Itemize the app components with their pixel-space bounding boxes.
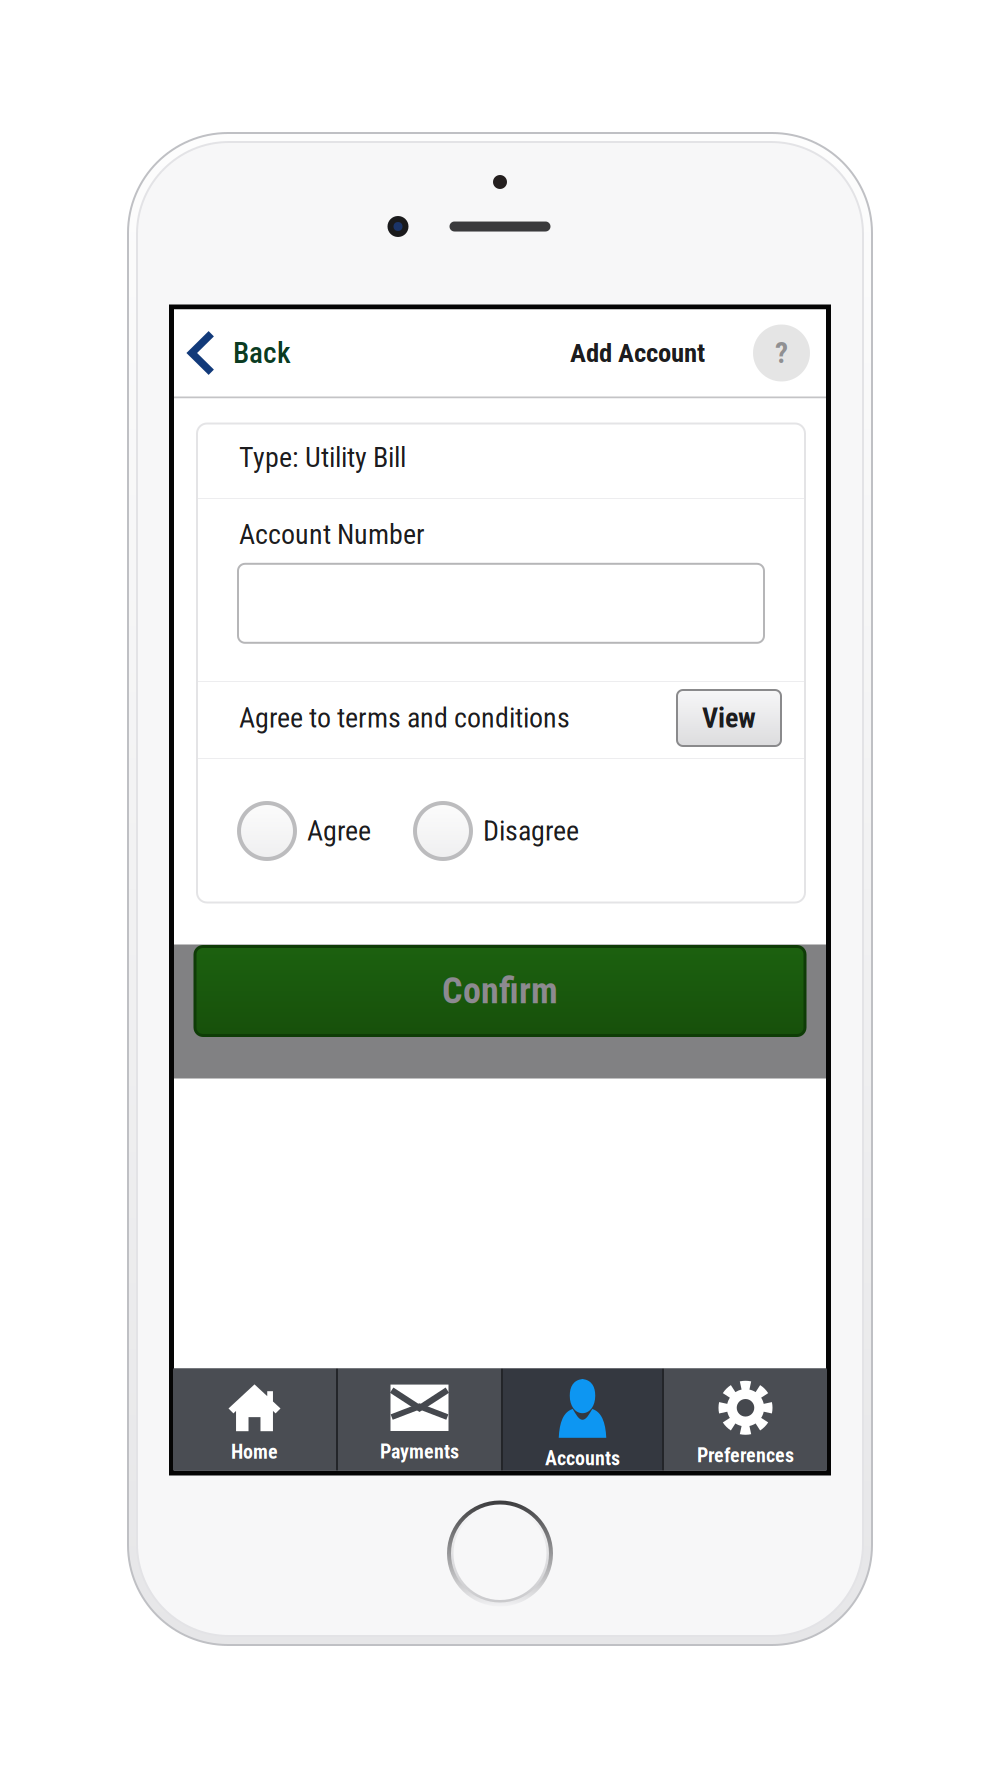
staticText: Account Number: [239, 518, 425, 551]
staticText: Accounts: [545, 1447, 620, 1470]
staticText: View: [702, 702, 756, 734]
staticText: Agree: [307, 815, 371, 847]
button[interactable]: View: [677, 690, 781, 746]
button[interactable]: Back: [174, 310, 291, 396]
staticText: ?: [775, 336, 788, 370]
staticText: Home: [231, 1440, 278, 1464]
button[interactable]: Agree: [239, 803, 371, 859]
staticText: Disagree: [483, 815, 579, 847]
staticText: Add Account: [570, 337, 705, 369]
button[interactable]: Payments: [338, 1368, 501, 1470]
staticText: Confirm: [442, 970, 558, 1012]
button[interactable]: Home: [173, 1368, 336, 1470]
staticText: Back: [233, 336, 291, 370]
staticText: Agree to terms and conditions: [239, 702, 570, 734]
staticText: Type: Utility Bill: [239, 441, 406, 474]
button[interactable]: Confirm: [195, 946, 805, 1035]
staticText: Preferences: [697, 1444, 794, 1467]
button[interactable]: Accounts: [503, 1368, 662, 1470]
button[interactable]: Preferences: [664, 1368, 827, 1470]
staticText: Payments: [380, 1440, 459, 1463]
button[interactable]: Help: [753, 324, 810, 381]
button[interactable]: Disagree: [415, 803, 579, 859]
